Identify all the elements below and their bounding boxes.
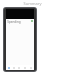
button[interactable]: [16, 65, 22, 70]
button[interactable]: [6, 65, 11, 70]
staticText: Spending: [7, 20, 21, 24]
button[interactable]: [11, 65, 16, 70]
staticText: Summary: [23, 1, 42, 6]
button[interactable]: [22, 65, 28, 70]
button[interactable]: [28, 65, 34, 70]
